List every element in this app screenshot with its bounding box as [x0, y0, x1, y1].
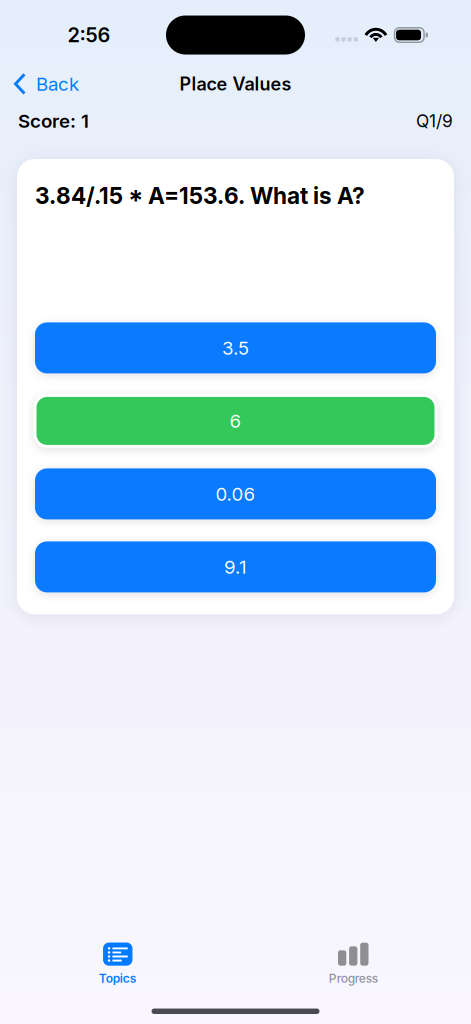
staticText: Progress — [329, 971, 378, 986]
staticText: Score: 1 — [18, 110, 89, 132]
button[interactable]: Topics — [0, 942, 235, 986]
staticText: Topics — [99, 971, 137, 986]
staticText: 2:56 — [67, 23, 110, 47]
staticText: Place Values — [179, 73, 291, 95]
staticText: 3.5 — [222, 337, 249, 359]
staticText: 9.1 — [224, 556, 247, 578]
button[interactable]: 6 — [35, 395, 436, 446]
button[interactable]: 0.06 — [35, 468, 436, 519]
staticText: 3.84/.15 * A=153.6. What is A? — [35, 182, 365, 209]
staticText: Back — [36, 73, 79, 95]
button[interactable]: 3.5 — [35, 322, 436, 373]
staticText: Q1/9 — [416, 110, 453, 131]
button[interactable]: Back — [0, 67, 89, 101]
button[interactable]: Progress — [235, 942, 471, 986]
staticText: 6 — [229, 410, 241, 432]
button[interactable]: 9.1 — [35, 541, 436, 592]
staticText: 0.06 — [215, 483, 255, 505]
